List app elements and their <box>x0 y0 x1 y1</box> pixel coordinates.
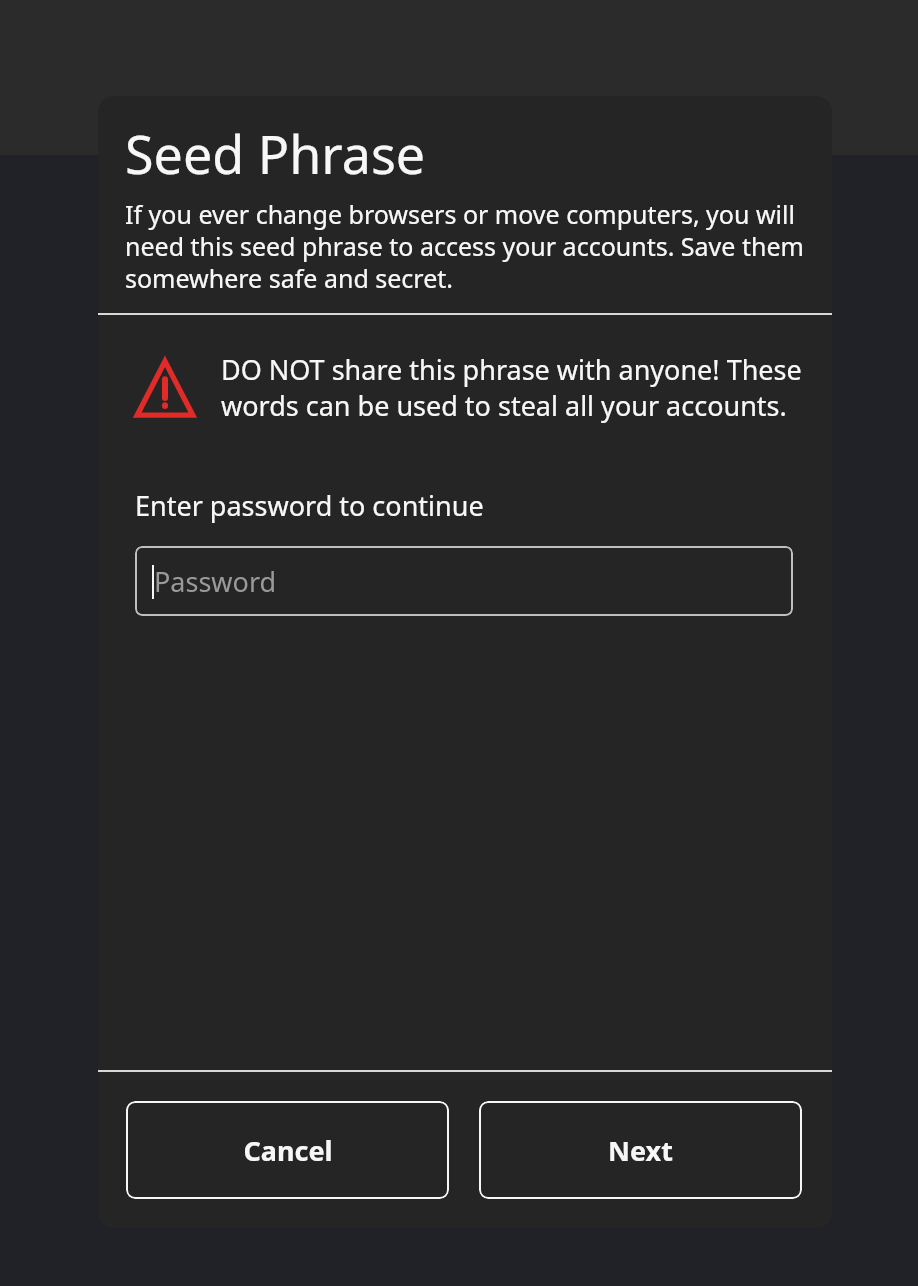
button[interactable]: Next <box>479 1101 802 1199</box>
staticText: Password <box>154 563 277 600</box>
other: Warning <box>134 357 196 419</box>
staticText: Cancel <box>243 1132 333 1169</box>
button[interactable]: Password <box>135 546 793 616</box>
staticText: DO NOT share this phrase with anyone! Th… <box>221 351 804 424</box>
staticText: Next <box>608 1132 673 1169</box>
staticText: Seed Phrase <box>125 118 426 189</box>
button[interactable]: Cancel <box>126 1101 449 1199</box>
staticText: If you ever change browsers or move comp… <box>125 197 804 295</box>
staticText: Enter password to continue <box>135 487 484 524</box>
